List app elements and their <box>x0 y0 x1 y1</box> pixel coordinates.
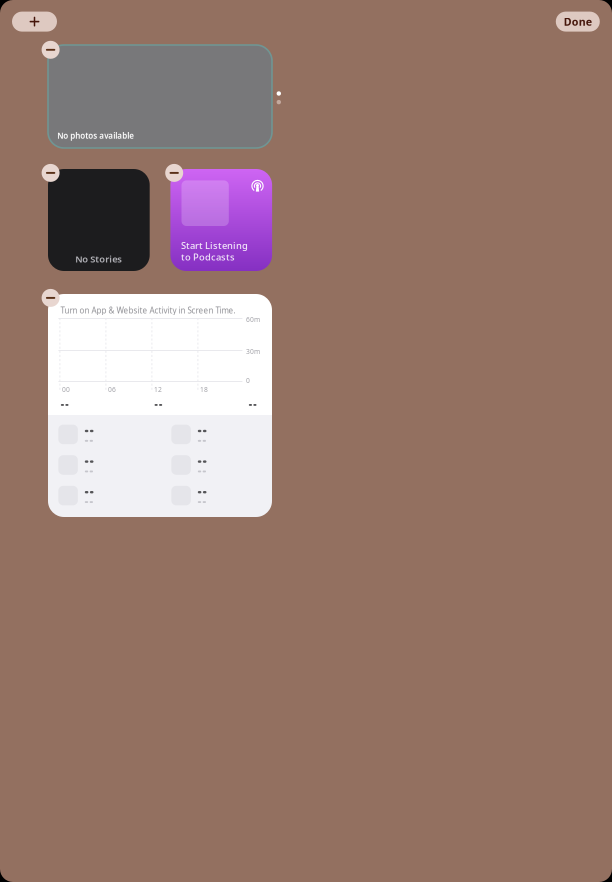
button[interactable]: Remove widget <box>42 41 60 59</box>
staticText: 12 <box>154 385 162 394</box>
staticText: 30m <box>246 347 260 356</box>
staticText: 0 <box>246 376 250 385</box>
staticText: 00 <box>62 385 70 394</box>
staticText: Start Listening <box>181 239 248 252</box>
button[interactable]: Remove widget <box>42 164 60 182</box>
staticText: No photos available <box>57 130 134 141</box>
staticText: to Podcasts <box>181 251 235 263</box>
staticText: 18 <box>200 385 208 394</box>
button[interactable]: Screen Time widget <box>48 294 272 517</box>
button[interactable]: Stories widget <box>48 169 150 271</box>
staticText: Done <box>564 14 592 29</box>
button[interactable]: Remove widget <box>42 289 60 307</box>
button[interactable]: Remove widget <box>165 164 183 182</box>
button[interactable]: Add widget <box>12 12 57 32</box>
staticText: No Stories <box>75 253 122 265</box>
staticText: Turn on App & Website Activity in Screen… <box>60 305 235 316</box>
staticText: 06 <box>108 385 116 394</box>
staticText: 60m <box>246 315 260 324</box>
button[interactable]: Podcasts widget <box>170 169 272 271</box>
button[interactable]: Done <box>556 12 600 32</box>
button[interactable]: Photos widget <box>48 45 272 148</box>
